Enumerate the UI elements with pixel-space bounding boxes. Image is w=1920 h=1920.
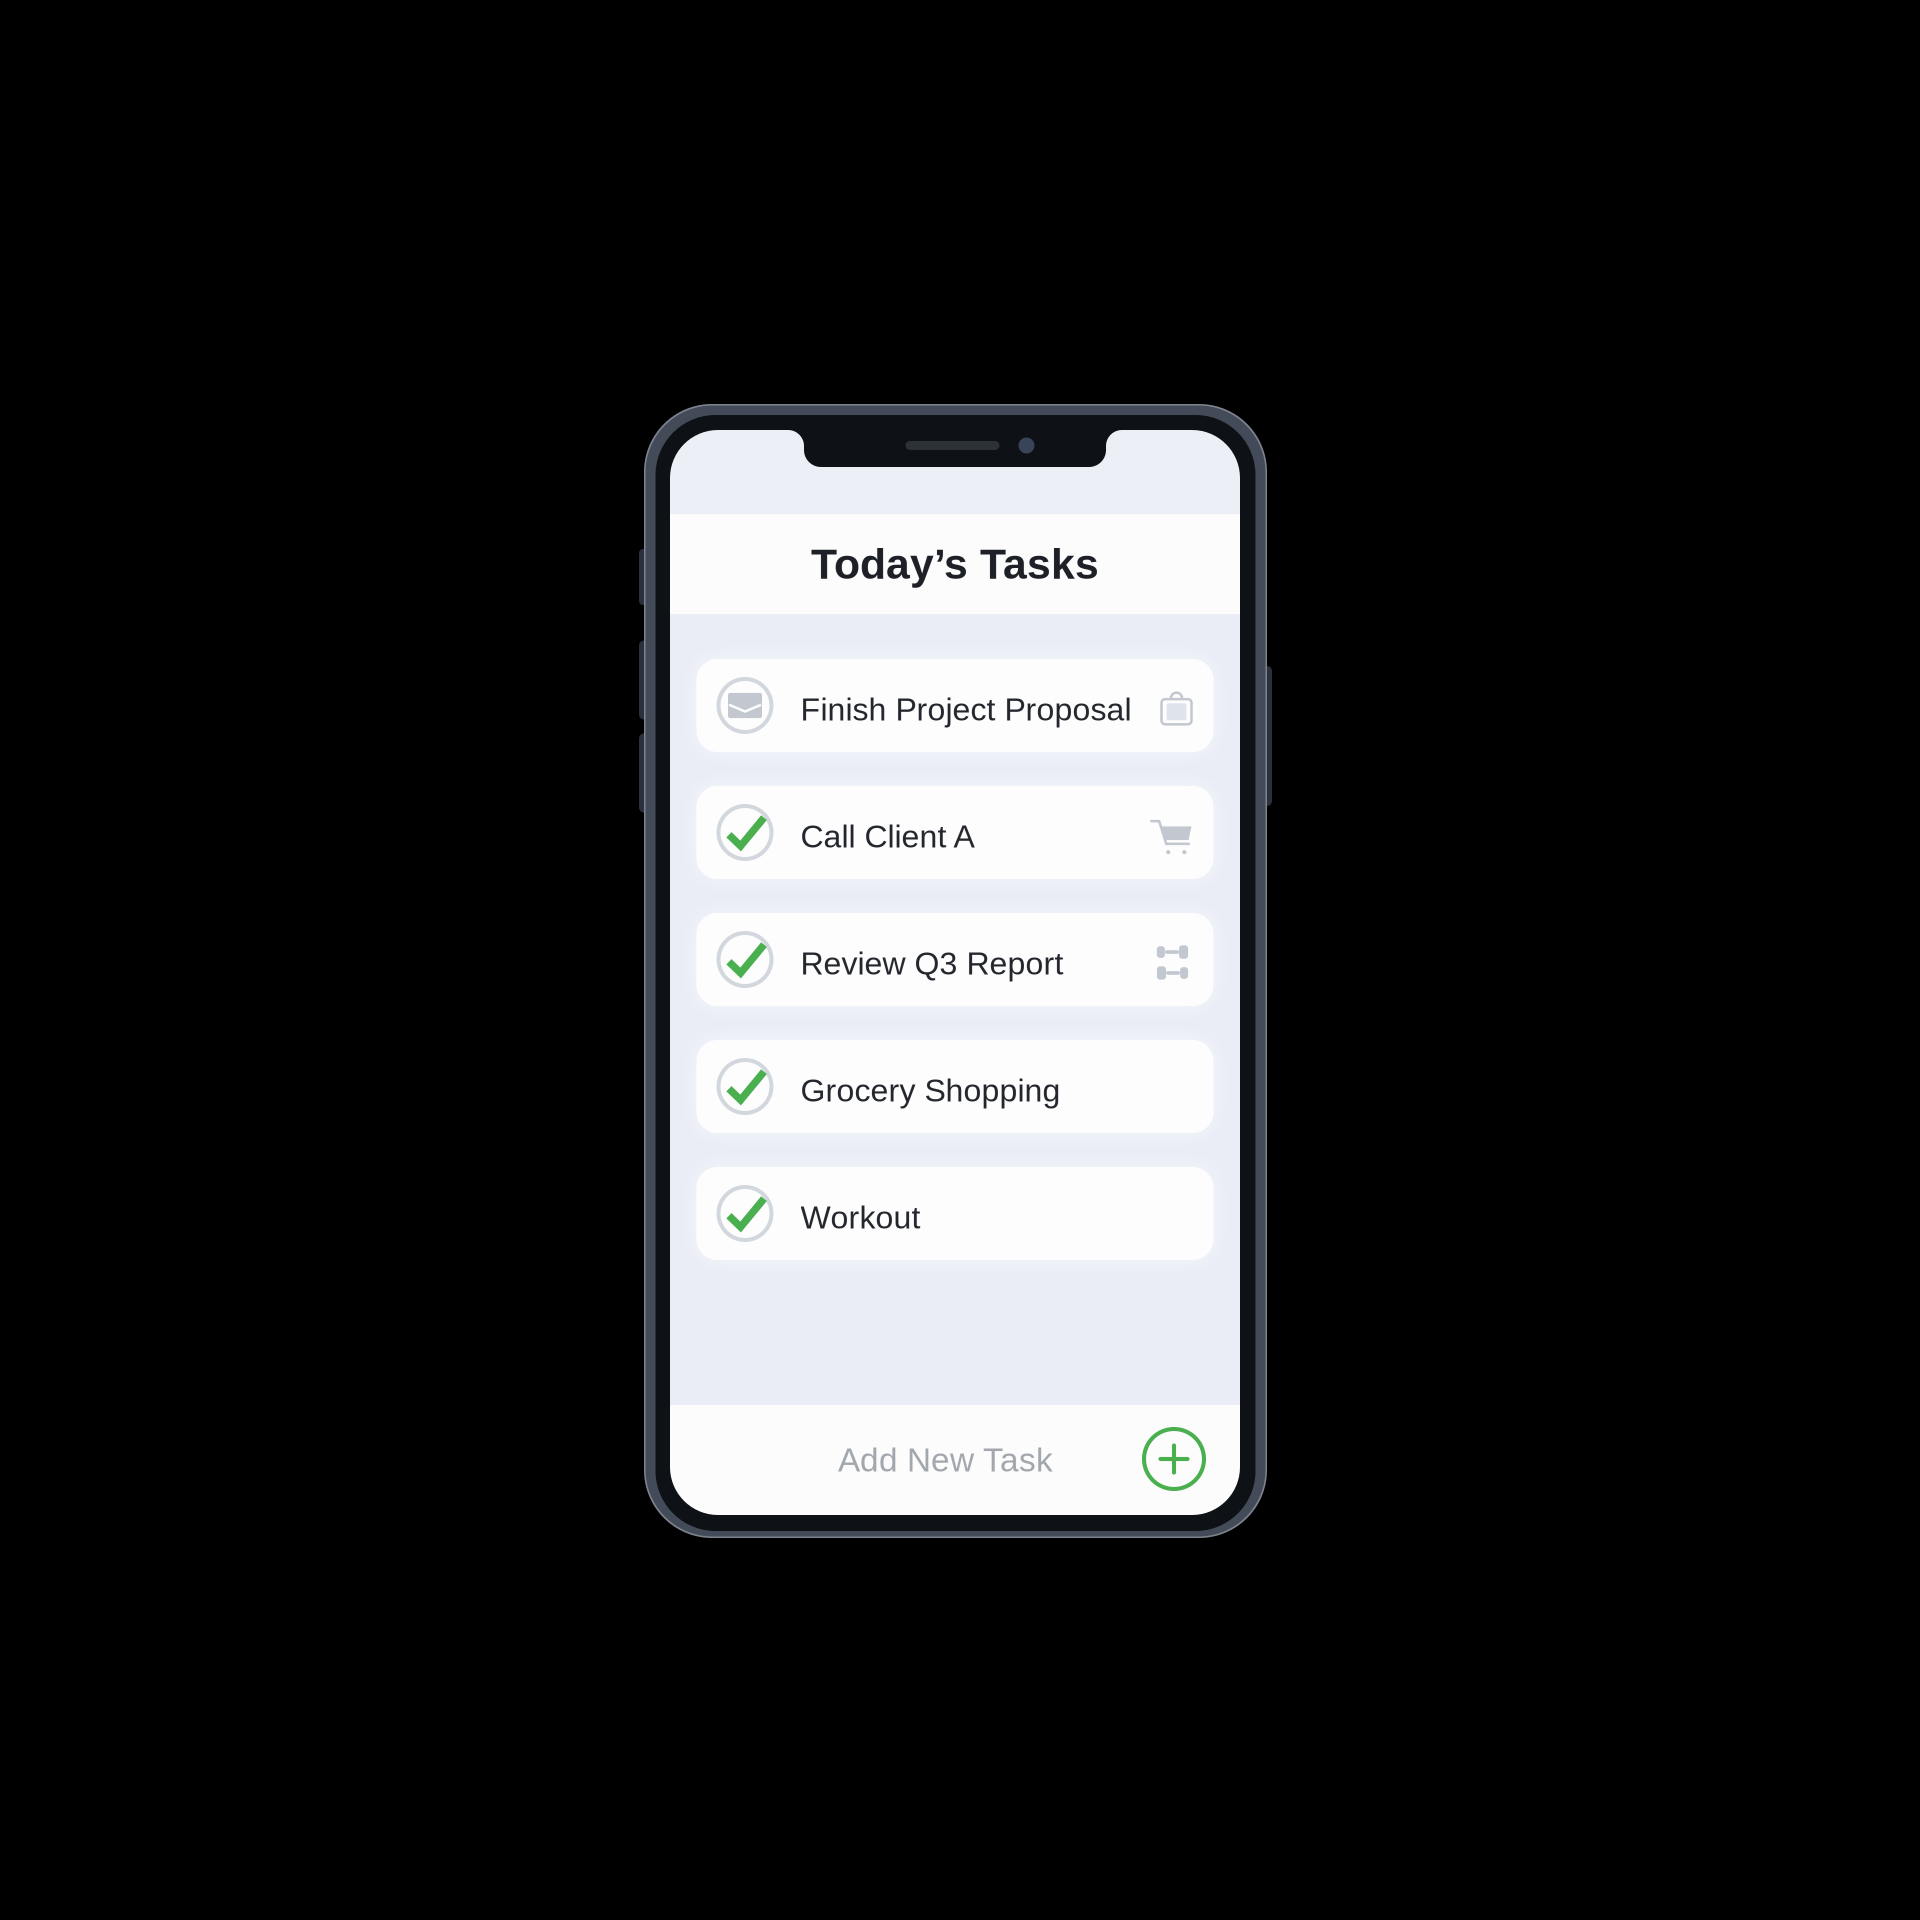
staticText: Grocery Shopping (800, 1073, 1060, 1108)
button[interactable]: Mark Grocery Shopping incomplete (716, 1058, 773, 1115)
staticText: Finish Project Proposal (800, 692, 1131, 727)
button[interactable]: Mark Review Q3 Report incomplete (716, 931, 773, 988)
button[interactable]: Mark Call Client A incomplete (716, 804, 773, 861)
staticText: Add New Task (838, 1441, 1053, 1479)
staticText: Today’s Tasks (811, 540, 1099, 588)
button[interactable]: Grocery Shopping (696, 1040, 1213, 1133)
button[interactable]: Add New Task (670, 1405, 1240, 1515)
staticText: Review Q3 Report (800, 946, 1063, 981)
staticText: Call Client A (800, 819, 974, 854)
button[interactable]: Finish Project Proposal (696, 659, 1213, 752)
button[interactable]: Mark Workout incomplete (716, 1185, 773, 1242)
staticText: Workout (800, 1200, 920, 1235)
button[interactable]: Review Q3 Report (696, 913, 1213, 1006)
button[interactable]: Call Client A (696, 786, 1213, 879)
button[interactable]: Workout (696, 1167, 1213, 1260)
button[interactable]: Mark Finish Project Proposal complete (716, 677, 773, 734)
